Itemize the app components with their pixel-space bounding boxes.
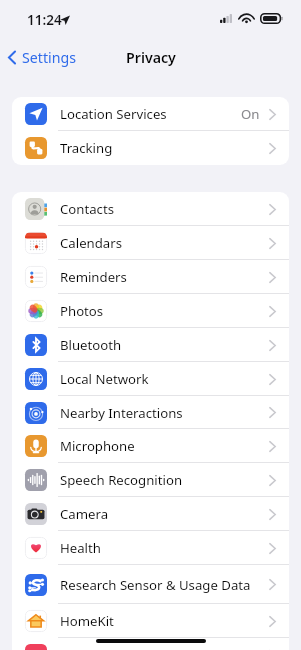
staticText: Tracking [60, 139, 113, 157]
button[interactable]: Microphone [12, 429, 289, 463]
staticText: Contacts [60, 200, 115, 218]
staticText: Local Network [60, 370, 149, 388]
staticText: Photos [60, 302, 104, 320]
button[interactable]: Media & Apple Music [12, 638, 289, 650]
button[interactable]: Local Network [12, 362, 289, 396]
staticText: Location Services [60, 105, 167, 123]
staticText: HomeKit [60, 612, 114, 630]
staticText: Research Sensor & Usage Data [60, 576, 251, 594]
button[interactable]: Camera [12, 497, 289, 531]
staticText: Calendars [60, 234, 122, 252]
button[interactable]: Photos [12, 294, 289, 328]
button[interactable]: Bluetooth [12, 328, 289, 362]
staticText: Reminders [60, 268, 127, 286]
staticText: Speech Recognition [60, 471, 183, 489]
staticText: Microphone [60, 437, 135, 455]
button[interactable]: HomeKit [12, 604, 289, 638]
staticText: Settings [22, 48, 76, 67]
button[interactable]: Calendars [12, 226, 289, 260]
staticText: On [241, 105, 260, 123]
button[interactable]: Health [12, 531, 289, 565]
button[interactable]: Research Sensor & Usage Data [12, 565, 289, 604]
staticText: 11:24 [27, 11, 62, 29]
button[interactable]: Contacts [12, 192, 289, 226]
button[interactable]: Reminders [12, 260, 289, 294]
button[interactable]: Tracking [12, 131, 289, 165]
staticText: Camera [60, 505, 109, 523]
button[interactable]: Location Services [12, 97, 289, 131]
staticText: Health [60, 539, 101, 557]
staticText: Privacy [126, 48, 176, 67]
button[interactable]: Settings [0, 36, 86, 78]
staticText: Bluetooth [60, 336, 122, 354]
button[interactable]: Speech Recognition [12, 463, 289, 497]
staticText: Nearby Interactions [60, 404, 183, 422]
button[interactable]: Nearby Interactions [12, 396, 289, 429]
